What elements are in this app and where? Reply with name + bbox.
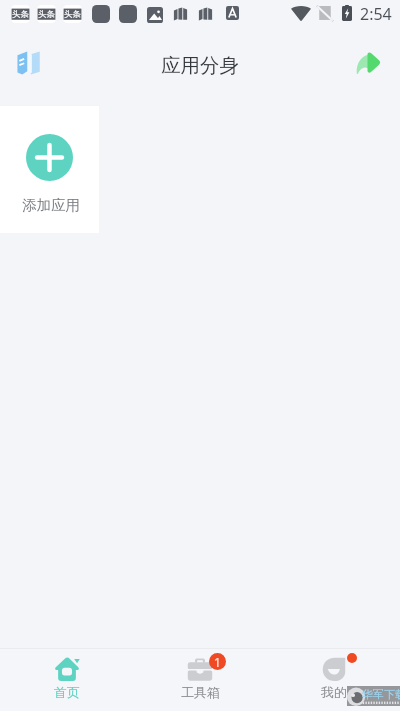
staticText: 头条	[38, 9, 55, 20]
button[interactable]: 我的	[290, 648, 378, 711]
button[interactable]: Share	[345, 41, 389, 85]
staticText: 工具箱	[181, 684, 220, 700]
button[interactable]: Guide	[6, 41, 50, 85]
staticText: 2:54	[360, 3, 392, 25]
staticText: 添加应用	[22, 196, 80, 214]
button[interactable]: 首页	[23, 648, 111, 711]
staticText: 头条	[12, 9, 29, 20]
staticText: 我的	[321, 684, 347, 700]
button[interactable]: 1	[156, 648, 244, 711]
button[interactable]: 添加应用	[0, 106, 99, 233]
staticText: 1	[214, 654, 221, 670]
staticText: 头条	[64, 9, 81, 20]
staticText: 首页	[54, 684, 80, 700]
staticText: 华军下载	[362, 687, 400, 701]
staticText: 应用分身	[161, 53, 239, 78]
